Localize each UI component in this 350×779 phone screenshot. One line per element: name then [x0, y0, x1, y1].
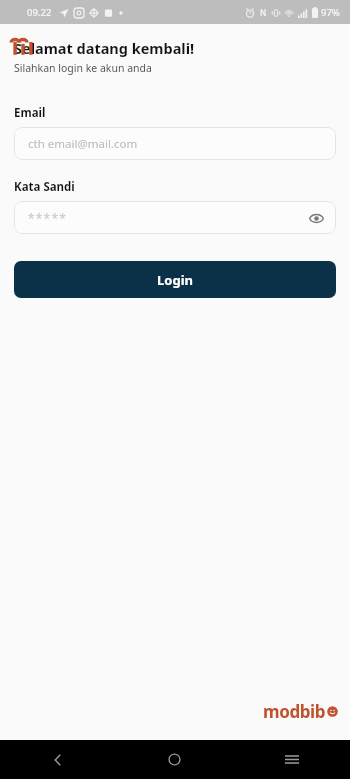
button[interactable]: Login — [14, 261, 336, 298]
button[interactable]: cth email@mail.com — [14, 127, 336, 160]
staticText: Selamat datang kembali! — [14, 38, 195, 58]
staticText: Kata Sandi — [14, 179, 75, 195]
button[interactable]: Back — [0, 740, 116, 779]
button[interactable]: Show password — [304, 206, 328, 230]
staticText: 09.22 — [27, 6, 52, 19]
staticText: ***** — [28, 210, 68, 226]
staticText: 97% — [321, 6, 340, 19]
staticText: cth email@mail.com — [28, 136, 138, 152]
button[interactable]: Recent apps — [233, 740, 350, 779]
staticText: Silahkan login ke akun anda — [14, 61, 152, 75]
button[interactable]: ***** — [14, 201, 336, 234]
staticText: Email — [14, 105, 46, 121]
staticText: N — [260, 7, 267, 18]
button[interactable]: Home — [116, 740, 233, 779]
staticText: Login — [157, 271, 193, 289]
staticText: modbib — [263, 700, 326, 723]
